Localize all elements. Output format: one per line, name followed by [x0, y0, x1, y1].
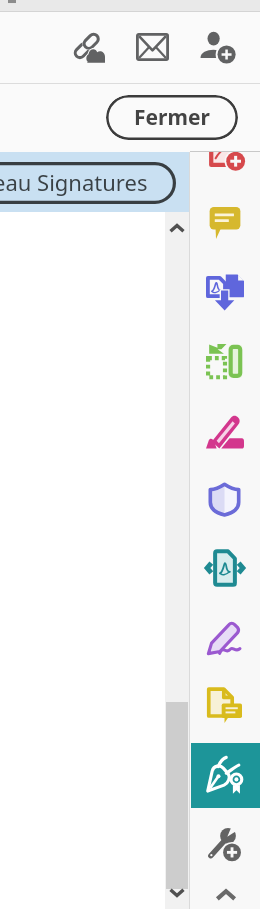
button[interactable]: Fill and sign [191, 605, 260, 669]
button[interactable]: Add comment to document [191, 673, 260, 737]
button[interactable]: Add person [192, 24, 243, 70]
button[interactable]: Fermer [106, 95, 238, 140]
button[interactable]: Highlight [191, 398, 260, 462]
button[interactable]: Comment [191, 191, 260, 255]
button[interactable] [0, 162, 176, 204]
button[interactable]: Export PDF [191, 260, 260, 324]
button[interactable]: Share link [66, 25, 112, 70]
button[interactable]: Organize pages [191, 329, 260, 393]
button[interactable]: Scroll down [165, 875, 189, 909]
button[interactable]: Email [129, 26, 176, 68]
button[interactable]: Collapse panel [205, 882, 246, 909]
button[interactable]: Protect [191, 467, 260, 531]
staticText: Fermer [134, 103, 210, 132]
button[interactable]: Compress PDF [191, 536, 260, 600]
button[interactable]: Certificates [191, 743, 260, 808]
button[interactable]: Scroll up [165, 212, 189, 246]
button[interactable]: Add sticky note [191, 152, 260, 190]
button[interactable]: More tools [191, 812, 260, 876]
staticText: eau Signatures [0, 167, 148, 197]
